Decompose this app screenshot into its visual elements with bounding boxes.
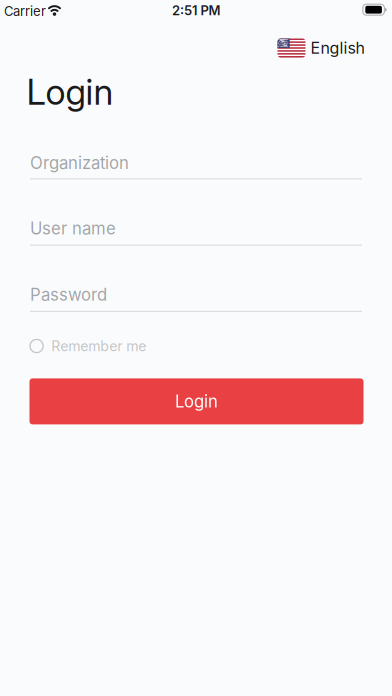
staticText: Carrier [4, 3, 46, 19]
staticText: English [310, 38, 364, 58]
staticText: User name [30, 218, 116, 238]
staticText: Organization [30, 153, 129, 173]
button[interactable]: English [277, 38, 364, 58]
staticText: Password [30, 284, 107, 305]
staticText: 2:51 [172, 3, 197, 18]
staticText: Remember me [51, 337, 146, 355]
staticText: Login [175, 391, 218, 411]
staticText: PM [201, 3, 221, 18]
staticText: Login [26, 71, 113, 113]
button[interactable]: Login [29, 378, 363, 424]
button[interactable]: Remember me [30, 337, 146, 355]
